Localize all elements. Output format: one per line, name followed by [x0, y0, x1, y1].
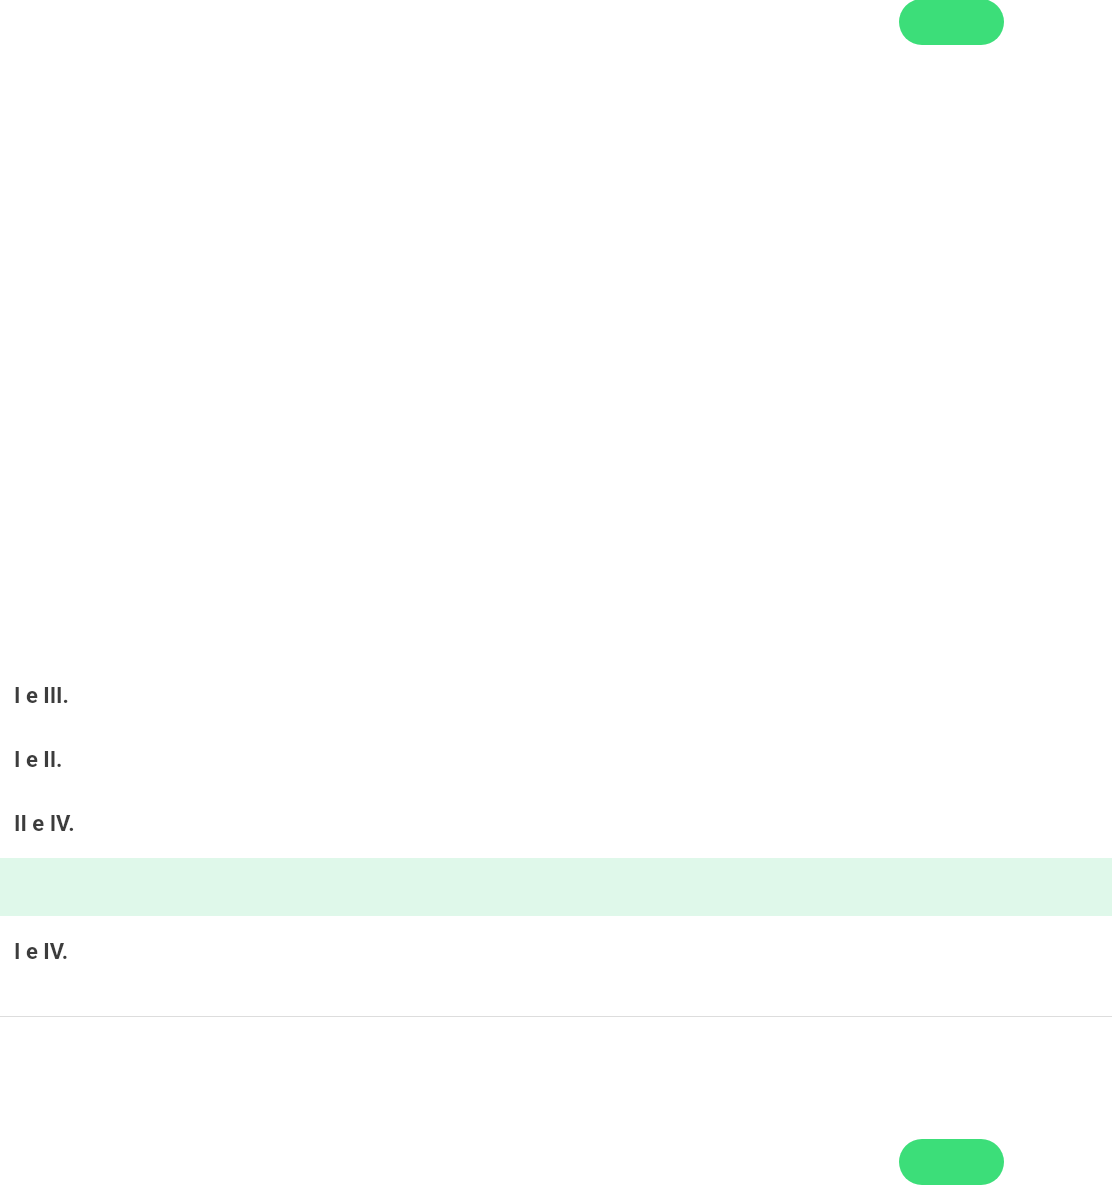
button[interactable]: II e IV. — [0, 794, 1112, 852]
button[interactable]: Confirm answer — [899, 1139, 1004, 1185]
button[interactable]: Question timer — [899, 0, 1004, 45]
staticText: I e IV. — [14, 939, 69, 965]
button[interactable]: I e III. — [0, 666, 1112, 724]
staticText: I e II. — [14, 747, 63, 773]
button[interactable]: I e II. — [0, 730, 1112, 788]
staticText: II e IV. — [14, 811, 75, 837]
staticText: I e III. — [14, 683, 69, 709]
button[interactable]: I e IV. — [0, 922, 1112, 980]
